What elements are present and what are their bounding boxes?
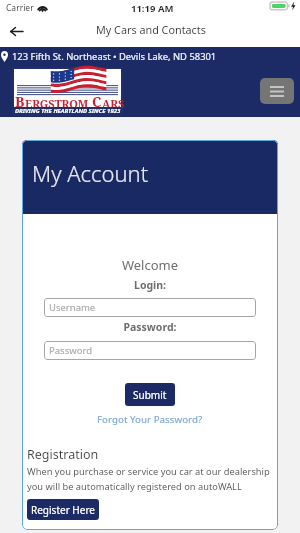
staticText: Password	[49, 344, 92, 357]
staticText: C	[92, 92, 102, 111]
staticText: Password:	[44, 320, 256, 334]
button[interactable]: Back	[3, 20, 29, 42]
button[interactable]: 123 Fifth St. Northeast • Devils Lake, N…	[0, 47, 300, 66]
button[interactable]: Register Here	[27, 499, 99, 520]
staticText: Login:	[44, 278, 256, 292]
button[interactable]: Bergstrom Cars logo	[12, 67, 123, 116]
button[interactable]: Submit	[125, 383, 175, 406]
button[interactable]: Username	[44, 298, 256, 317]
button[interactable]: Forgot Your Password?	[97, 413, 203, 426]
staticText: Username	[49, 301, 96, 314]
staticText: ARS	[102, 96, 125, 111]
staticText: My Account	[32, 158, 149, 188]
staticText: When you purchase or service you car at …	[27, 465, 275, 492]
staticText: Register Here	[31, 503, 95, 517]
button[interactable]: Password	[44, 341, 256, 360]
staticText: My Cars and Contacts	[96, 22, 206, 37]
button[interactable]: Menu	[260, 78, 294, 104]
staticText: ERGSTROM	[25, 96, 89, 111]
staticText: Welcome	[44, 256, 256, 274]
staticText: DRIVING THE HEARTLAND SINCE 1923	[15, 107, 121, 115]
staticText: Registration	[27, 446, 99, 463]
staticText: Submit	[133, 388, 167, 402]
staticText: 123 Fifth St. Northeast • Devils Lake, N…	[12, 50, 217, 63]
staticText: 11:19 AM	[131, 2, 174, 15]
staticText: B	[15, 92, 25, 111]
staticText: Carrier	[6, 2, 34, 14]
